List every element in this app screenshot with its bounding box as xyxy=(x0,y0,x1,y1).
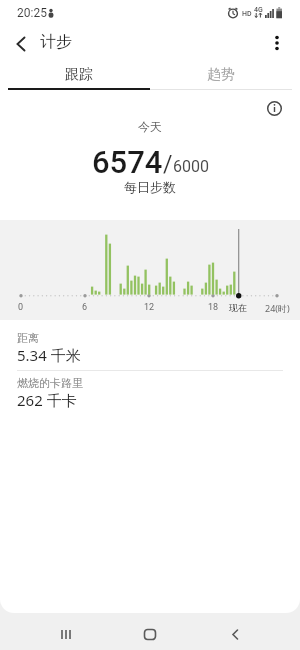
staticText: 燃烧的卡路里 xyxy=(17,376,83,390)
staticText: 5.34 千米 xyxy=(17,345,81,365)
staticText: 计步 xyxy=(40,32,72,52)
staticText: 18 xyxy=(208,302,219,313)
button[interactable] xyxy=(0,26,40,60)
staticText: 趋势 xyxy=(207,66,235,84)
staticText: / xyxy=(163,151,173,178)
button[interactable] xyxy=(261,95,288,122)
button[interactable]: 趋势 xyxy=(150,60,292,89)
staticText: 6 xyxy=(82,302,88,313)
staticText: 0 xyxy=(18,302,24,313)
staticText: 4G xyxy=(254,6,263,14)
staticText: 跟踪 xyxy=(65,66,93,84)
staticText: 现在 xyxy=(229,302,247,313)
staticText: 20:25 xyxy=(17,6,47,20)
staticText: 6574 xyxy=(92,144,163,180)
button[interactable] xyxy=(262,26,294,60)
button[interactable] xyxy=(46,613,86,650)
staticText: 距离 xyxy=(17,331,39,345)
button[interactable] xyxy=(215,613,255,650)
staticText: 12 xyxy=(144,302,155,313)
button[interactable] xyxy=(130,613,170,650)
staticText: HD xyxy=(242,10,252,18)
staticText: 每日步数 xyxy=(124,179,176,195)
staticText: 24(时) xyxy=(265,302,290,314)
staticText: 6000 xyxy=(173,157,209,176)
staticText: 262 千卡 xyxy=(17,390,77,410)
staticText: 今天 xyxy=(138,119,162,134)
button[interactable]: 跟踪 xyxy=(8,60,150,89)
